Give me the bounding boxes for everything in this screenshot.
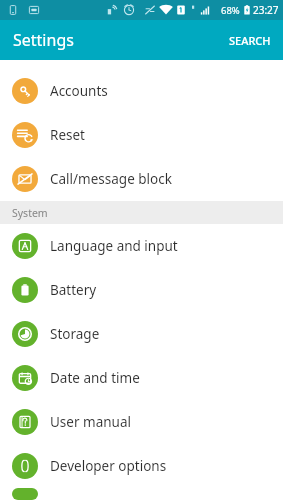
staticText: User manual	[50, 413, 131, 431]
staticText: Call/message block	[50, 170, 172, 188]
button[interactable]: Developer options	[0, 444, 283, 488]
other: Reset	[12, 122, 38, 148]
other: Developer options	[12, 453, 38, 479]
button[interactable]: Battery	[0, 268, 283, 312]
staticText: SEARCH	[229, 33, 271, 48]
button[interactable]: Date and time	[0, 356, 283, 400]
button[interactable]: Accounts	[0, 69, 283, 113]
other: Call/message block	[12, 166, 38, 192]
staticText: Battery	[50, 281, 97, 299]
staticText: 23:27	[253, 3, 279, 17]
other: User manual	[12, 409, 38, 435]
other: About device	[12, 488, 38, 500]
staticText: Date and time	[50, 369, 140, 387]
button[interactable]: SEARCH	[217, 24, 283, 57]
button[interactable]: Storage	[0, 312, 283, 356]
button[interactable]: User manual	[0, 400, 283, 444]
staticText: System	[12, 206, 48, 220]
staticText: Developer options	[50, 457, 167, 475]
button[interactable]: About device	[0, 488, 283, 500]
staticText: Storage	[50, 325, 100, 343]
staticText: Reset	[50, 126, 85, 144]
other: Battery	[12, 277, 38, 303]
staticText: Language and input	[50, 237, 178, 255]
staticText: Settings	[13, 29, 74, 51]
button[interactable]: Reset	[0, 113, 283, 157]
button[interactable]: Call/message block	[0, 157, 283, 201]
staticText: 68%	[221, 4, 240, 17]
other: Storage	[12, 321, 38, 347]
staticText: Accounts	[50, 82, 108, 100]
other: Date and time	[12, 365, 38, 391]
other: Language and input	[12, 233, 38, 259]
other: Accounts	[12, 78, 38, 104]
button[interactable]: Language and input	[0, 224, 283, 268]
